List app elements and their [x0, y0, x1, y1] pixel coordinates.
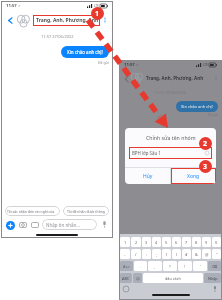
- button[interactable]: !: [178, 261, 192, 271]
- button[interactable]: Voice: [100, 220, 109, 229]
- button[interactable]: ☺: [133, 273, 142, 283]
- button[interactable]: đ: [182, 249, 191, 259]
- button[interactable]: Tôi đã nhận được thông: [63, 206, 109, 216]
- button[interactable]: Back: [4, 14, 16, 26]
- button[interactable]: Nhập: [204, 273, 221, 283]
- staticText: Hủy: [143, 173, 153, 180]
- button[interactable]: ': [193, 261, 207, 271]
- staticText: BPH lớp Sâu 1: [132, 150, 161, 156]
- staticText: 3: [203, 162, 208, 172]
- button[interactable]: -: [120, 249, 130, 259]
- staticText: ✓: [136, 63, 139, 67]
- staticText: Xin chào anh chị!: [67, 49, 103, 55]
- button[interactable]: Xong: [171, 168, 216, 184]
- staticText: !: [184, 264, 186, 269]
- button[interactable]: ;: [152, 249, 161, 259]
- button[interactable]: Video call: [100, 15, 110, 25]
- staticText: ABC: [122, 276, 130, 281]
- staticText: 5: [165, 240, 168, 245]
- button[interactable]: (: [162, 249, 171, 259]
- staticText: Trang, Anh, Phương, Anh: [146, 75, 204, 81]
- staticText: /: [135, 252, 137, 257]
- button[interactable]: Gallery: [30, 220, 39, 229]
- staticText: ☺: [136, 276, 140, 280]
- staticText: #+=: [123, 264, 130, 269]
- staticText: .: [140, 264, 142, 269]
- staticText: 1: [95, 9, 100, 19]
- button[interactable]: 5: [162, 237, 171, 247]
- button[interactable]: 0: [212, 237, 221, 247]
- button[interactable]: Tôi xác nhận đơn xin nghỉ của con: [5, 206, 60, 216]
- button[interactable]: Trang, Anh, Phương, Anh: [33, 15, 100, 26]
- staticText: Đã gửi: [98, 60, 109, 65]
- staticText: Nhập: [208, 276, 218, 281]
- staticText: 8: [195, 240, 198, 245]
- button[interactable]: Hủy: [125, 168, 170, 184]
- button[interactable]: 4: [152, 237, 161, 247]
- staticText: 11:57 27/06/2022: [155, 90, 186, 95]
- button[interactable]: :: [142, 249, 151, 259]
- staticText: &: [195, 252, 198, 257]
- button[interactable]: ?: [163, 261, 177, 271]
- staticText: 6: [175, 240, 178, 245]
- staticText: 11:57 27/06/2022: [41, 34, 74, 39]
- button[interactable]: 9: [202, 237, 211, 247]
- button[interactable]: ⌫: [208, 261, 221, 271]
- staticText: Xong: [187, 173, 200, 180]
- button[interactable]: 6: [172, 237, 181, 247]
- staticText: 1: [124, 240, 127, 245]
- staticText: 9: [205, 240, 208, 245]
- staticText: LTE: [203, 63, 208, 67]
- staticText: 2: [203, 139, 208, 149]
- button[interactable]: BPH lớp Sâu 1: [129, 147, 212, 159]
- button[interactable]: ": [212, 249, 221, 259]
- staticText: Tôi xác nhận đơn xin nghỉ của con: [7, 209, 58, 214]
- staticText: ,: [154, 264, 156, 269]
- button[interactable]: 1: [120, 237, 130, 247]
- staticText: (: [166, 252, 168, 257]
- staticText: 7: [185, 240, 188, 245]
- button[interactable]: ): [172, 249, 181, 259]
- staticText: @: [205, 252, 209, 257]
- button[interactable]: @: [202, 249, 211, 259]
- staticText: 11:57: [124, 62, 135, 68]
- staticText: ": [216, 252, 218, 257]
- staticText: LTE: [94, 4, 99, 8]
- staticText: Nhập tin nhắn...: [46, 222, 80, 228]
- button[interactable]: 7: [182, 237, 191, 247]
- staticText: -: [124, 252, 126, 257]
- staticText: ⌫: [212, 264, 218, 268]
- button[interactable]: &: [192, 249, 201, 259]
- staticText: 3: [145, 240, 148, 245]
- button[interactable]: More: [5, 220, 15, 230]
- staticText: Tôi đã nhận được thông: [67, 209, 105, 214]
- button[interactable]: ,: [148, 261, 162, 271]
- staticText: 0: [215, 240, 218, 245]
- staticText: Đã gửi: [208, 113, 218, 117]
- button[interactable]: Nhập tin nhắn...: [42, 219, 97, 230]
- button[interactable]: 3: [142, 237, 151, 247]
- button[interactable]: #+=: [120, 261, 133, 271]
- staticText: ): [176, 252, 178, 257]
- staticText: ✓: [18, 4, 21, 8]
- button[interactable]: Camera: [18, 220, 27, 229]
- button[interactable]: 2: [131, 237, 141, 247]
- staticText: Chỉnh sửa tên nhóm: [146, 134, 196, 141]
- staticText: 11:57: [6, 3, 17, 9]
- button[interactable]: ABC: [120, 273, 132, 283]
- button[interactable]: /: [131, 249, 141, 259]
- staticText: ': [200, 264, 201, 269]
- staticText: dấu cách: [165, 276, 181, 281]
- staticText: ?: [169, 264, 171, 269]
- staticText: 4: [155, 240, 158, 245]
- staticText: :: [146, 252, 148, 257]
- staticText: đ: [185, 252, 188, 257]
- button[interactable]: dấu cách: [143, 273, 203, 283]
- staticText: Xin chào anh chị!: [181, 104, 213, 109]
- staticText: ;: [156, 252, 158, 257]
- staticText: Trang, Anh, Phương, Anh: [36, 17, 99, 24]
- staticText: 2: [135, 240, 138, 245]
- button[interactable]: .: [134, 261, 147, 271]
- button[interactable]: 8: [192, 237, 201, 247]
